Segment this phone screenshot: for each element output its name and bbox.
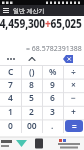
button[interactable]: 5 (21, 91, 42, 105)
staticText: ÷ (71, 66, 76, 78)
staticText: 6 (50, 92, 55, 104)
button[interactable]: 0 (0, 119, 21, 133)
button[interactable] (0, 52, 21, 65)
staticText: − (71, 92, 76, 104)
button[interactable]: 6 (42, 91, 63, 105)
button[interactable]: 1 (0, 105, 21, 119)
button[interactable]: 9 (42, 78, 63, 91)
button[interactable]: ÷ (63, 65, 84, 78)
staticText: 9 (50, 79, 55, 91)
staticText: = 68.5782391388 (26, 44, 82, 54)
staticText: 4 (8, 92, 13, 104)
staticText: C (8, 66, 14, 78)
button[interactable]: . (42, 119, 63, 133)
staticText: × (71, 79, 76, 91)
staticText: 일반 계산기 (13, 7, 45, 15)
button[interactable] (21, 52, 42, 65)
staticText: 4,459,300+65,025 (0, 15, 82, 31)
staticText: = (72, 121, 77, 132)
button[interactable]: () (21, 65, 42, 78)
button[interactable]: 일반 계산기 (0, 5, 84, 16)
button[interactable]: × (63, 78, 84, 91)
button[interactable]: 3 (42, 105, 63, 119)
button[interactable]: C (0, 65, 21, 78)
staticText: . (51, 120, 54, 132)
staticText: + (71, 106, 76, 118)
staticText: 5 (29, 92, 34, 104)
button[interactable]: 7 (0, 78, 21, 91)
staticText: 2 (29, 106, 34, 118)
staticText: () (29, 66, 35, 78)
button[interactable] (63, 52, 72, 65)
button[interactable]: % (42, 65, 63, 78)
staticText: 0 (8, 120, 13, 132)
button[interactable]: 2 (21, 105, 42, 119)
button[interactable]: = (63, 119, 84, 133)
staticText: 8 (29, 79, 34, 91)
staticText: 00 (27, 120, 37, 132)
staticText: 1 (8, 106, 13, 118)
button[interactable]: + (63, 105, 84, 119)
button[interactable]: 4 (0, 91, 21, 105)
button[interactable]: 00 (21, 119, 42, 133)
button[interactable]: − (63, 91, 84, 105)
button[interactable] (0, 5, 11, 16)
button[interactable] (0, 137, 84, 150)
staticText: % (49, 66, 57, 78)
staticText: 3 (50, 106, 55, 118)
button[interactable]: 8 (21, 78, 42, 91)
staticText: 7 (8, 79, 13, 91)
